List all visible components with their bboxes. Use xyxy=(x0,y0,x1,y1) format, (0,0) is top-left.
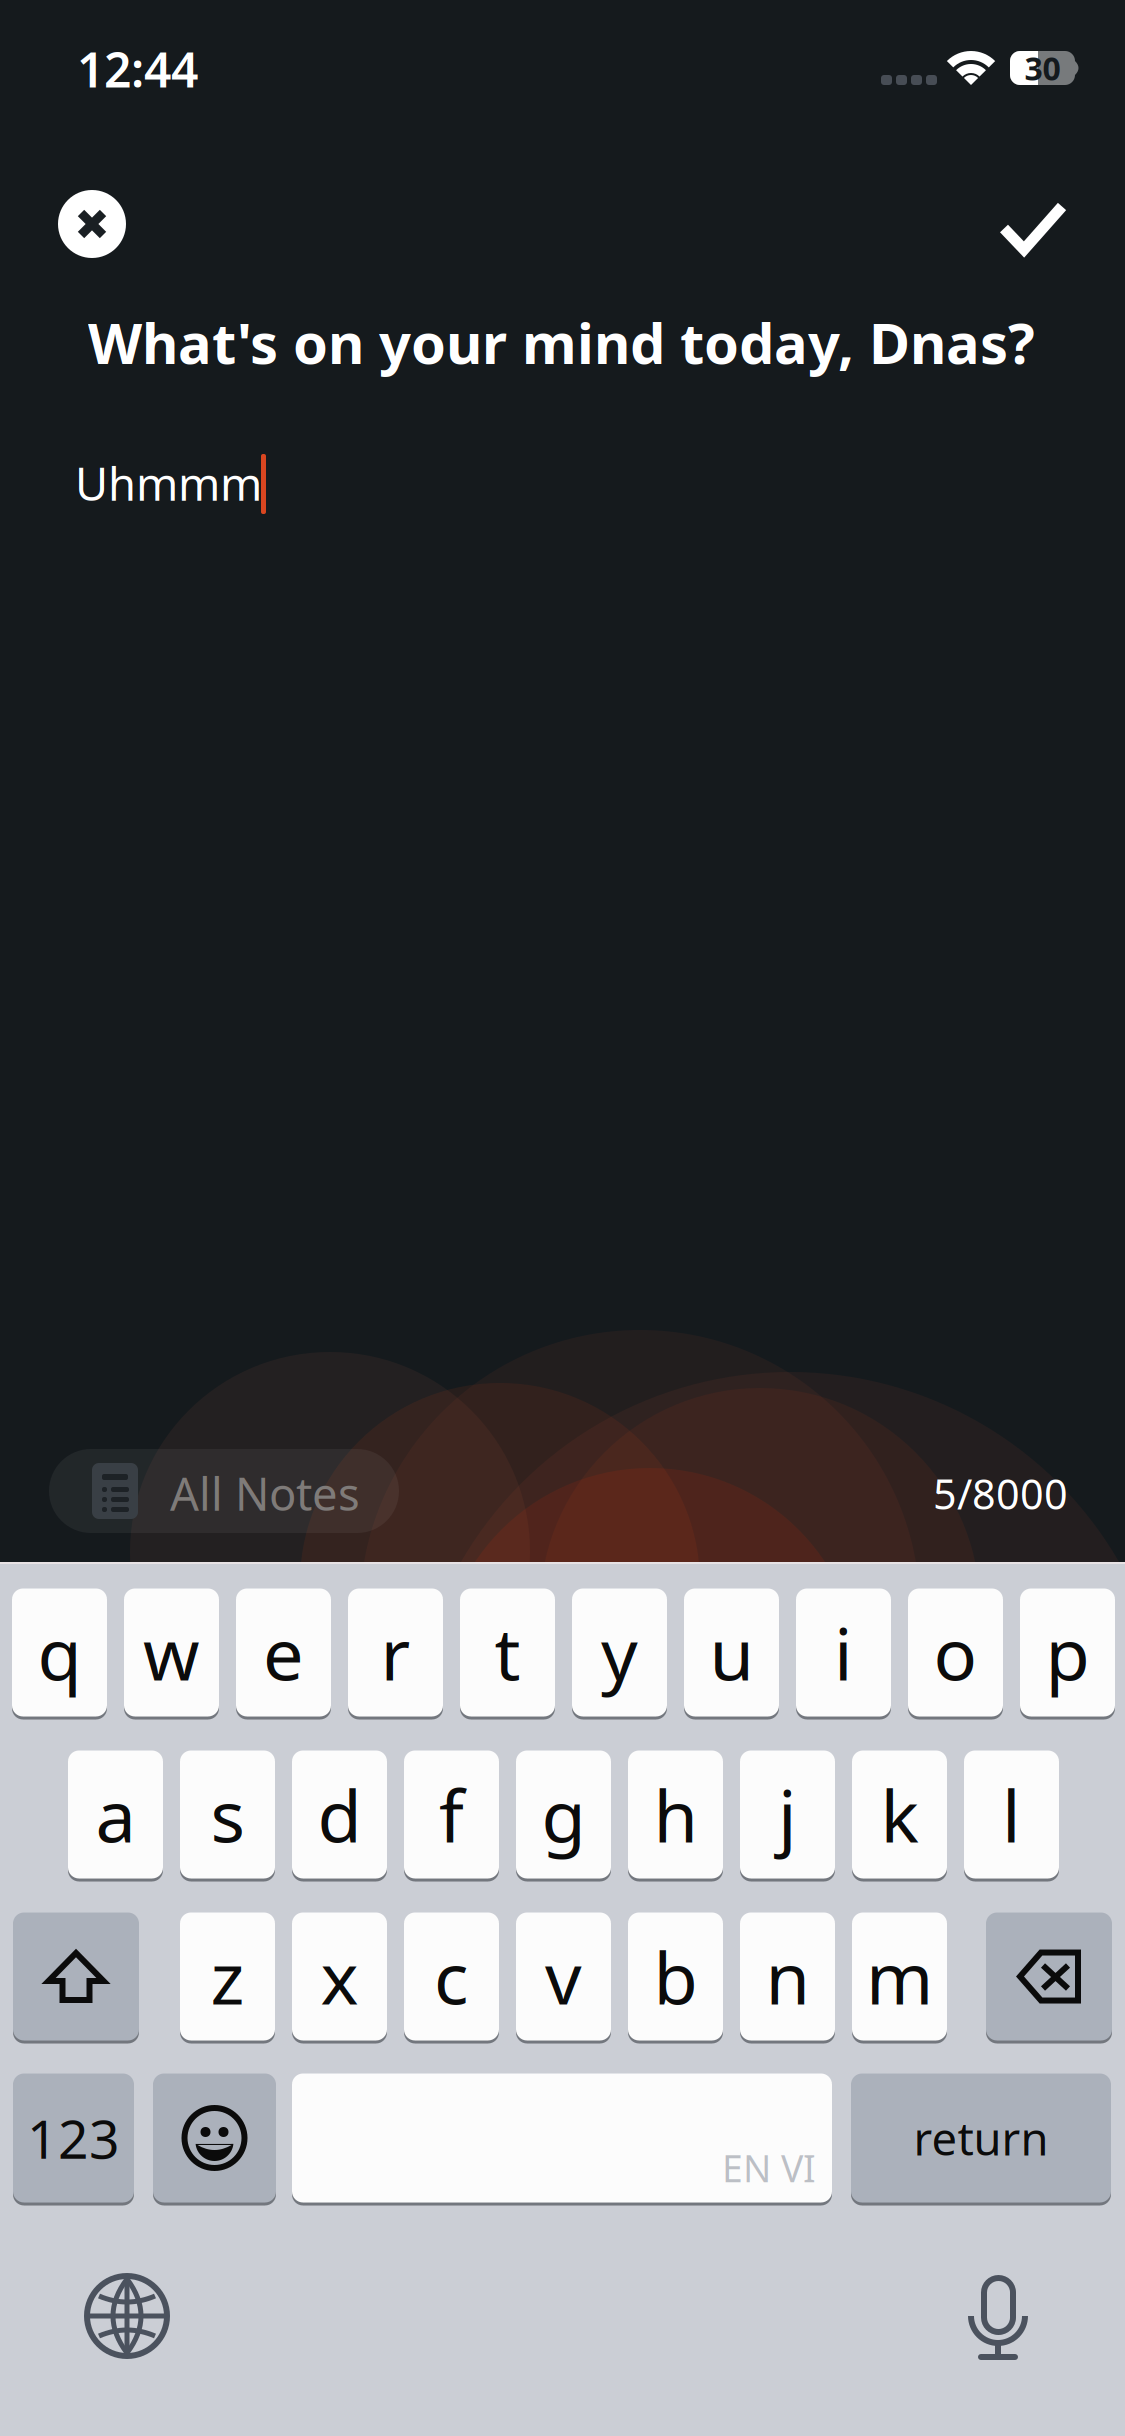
staticText: w xyxy=(143,1605,200,1700)
button[interactable]: z xyxy=(180,1911,275,2042)
button[interactable]: space xyxy=(292,2072,832,2204)
button[interactable]: g xyxy=(516,1749,611,1880)
staticText: 5/8000 xyxy=(933,1466,1068,1521)
button[interactable]: o xyxy=(908,1587,1003,1718)
staticText: l xyxy=(1002,1767,1021,1862)
staticText: q xyxy=(37,1605,81,1700)
staticText: EN VI xyxy=(722,2143,816,2192)
staticText: y xyxy=(601,1605,638,1700)
staticText: n xyxy=(765,1929,809,2024)
button[interactable]: k xyxy=(852,1749,947,1880)
staticText: s xyxy=(210,1767,244,1862)
button[interactable]: Next keyboard xyxy=(87,2276,167,2356)
staticText: g xyxy=(541,1767,585,1862)
button[interactable]: i xyxy=(796,1587,891,1718)
staticText: m xyxy=(866,1929,933,2024)
button[interactable]: v xyxy=(516,1911,611,2042)
staticText: c xyxy=(434,1929,469,2024)
button[interactable]: j xyxy=(740,1749,835,1880)
staticText: z xyxy=(210,1929,244,2024)
button[interactable]: Dictate xyxy=(970,2271,1026,2353)
staticText: a xyxy=(95,1767,135,1862)
button[interactable]: s xyxy=(180,1749,275,1880)
staticText: r xyxy=(380,1605,410,1700)
staticText: What's on your mind today, Dnas? xyxy=(88,305,1035,379)
button[interactable]: e xyxy=(236,1587,331,1718)
staticText: o xyxy=(933,1605,977,1700)
button[interactable]: r xyxy=(348,1587,443,1718)
staticText: Uhmmm xyxy=(75,453,262,513)
button[interactable]: f xyxy=(404,1749,499,1880)
button[interactable]: m xyxy=(852,1911,947,2042)
button[interactable]: return xyxy=(851,2072,1111,2204)
staticText: 123 xyxy=(27,2103,120,2173)
staticText: k xyxy=(880,1767,918,1862)
staticText: t xyxy=(494,1605,520,1700)
staticText: u xyxy=(709,1605,753,1700)
staticText: x xyxy=(320,1929,358,2024)
button[interactable]: u xyxy=(684,1587,779,1718)
staticText: return xyxy=(913,2108,1048,2168)
button[interactable]: d xyxy=(292,1749,387,1880)
button[interactable]: t xyxy=(460,1587,555,1718)
button[interactable]: x xyxy=(292,1911,387,2042)
staticText: h xyxy=(653,1767,697,1862)
button[interactable]: Shift xyxy=(13,1911,139,2042)
staticText: f xyxy=(439,1767,464,1862)
staticText: 30 xyxy=(1024,47,1060,89)
button[interactable]: All Notes xyxy=(49,1449,399,1533)
button[interactable]: b xyxy=(628,1911,723,2042)
staticText: e xyxy=(263,1605,304,1700)
button[interactable]: 123 xyxy=(13,2072,134,2204)
button[interactable]: y xyxy=(572,1587,667,1718)
staticText: b xyxy=(653,1929,697,2024)
button[interactable]: p xyxy=(1020,1587,1115,1718)
button[interactable]: n xyxy=(740,1911,835,2042)
button[interactable]: l xyxy=(964,1749,1059,1880)
button[interactable]: q xyxy=(12,1587,107,1718)
staticText: d xyxy=(317,1767,361,1862)
button[interactable]: Close xyxy=(58,190,126,258)
button[interactable]: Delete xyxy=(986,1911,1112,2042)
button[interactable]: h xyxy=(628,1749,723,1880)
button[interactable]: a xyxy=(68,1749,163,1880)
button[interactable]: Emoji xyxy=(153,2072,276,2204)
staticText: i xyxy=(834,1605,853,1700)
button[interactable]: c xyxy=(404,1911,499,2042)
staticText: j xyxy=(778,1767,797,1862)
staticText: All Notes xyxy=(170,1463,360,1523)
button[interactable]: w xyxy=(124,1587,219,1718)
staticText: 12:44 xyxy=(77,37,198,101)
staticText: p xyxy=(1045,1605,1089,1700)
button[interactable]: Save xyxy=(985,188,1081,268)
staticText: v xyxy=(545,1929,582,2024)
